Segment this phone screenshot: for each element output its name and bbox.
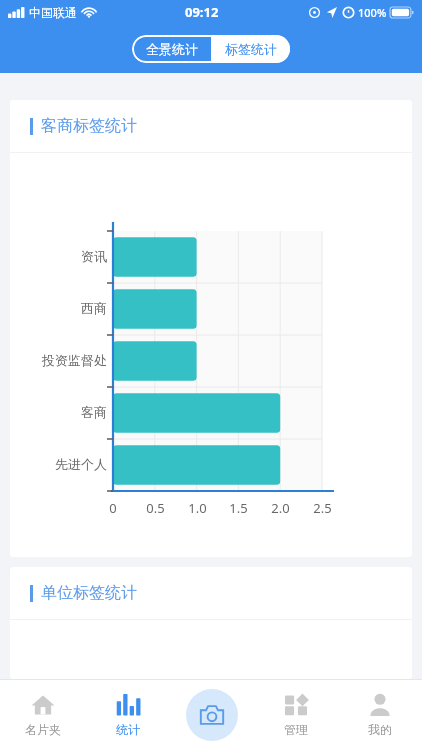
staticText: 中国联通 bbox=[29, 5, 77, 20]
button[interactable]: 名片夹 bbox=[0, 680, 85, 750]
staticText: 投资监督处 bbox=[10, 352, 107, 368]
staticText: 我的 bbox=[368, 722, 392, 737]
staticText: 先进个人 bbox=[10, 456, 107, 472]
button[interactable]: 标签统计 bbox=[211, 35, 290, 63]
staticText: 客商标签统计 bbox=[41, 116, 137, 136]
staticText: 全景统计 bbox=[146, 41, 198, 57]
button[interactable]: 管理 bbox=[254, 680, 338, 750]
staticText: 0.5 bbox=[146, 499, 165, 517]
staticText: 2.0 bbox=[271, 499, 290, 517]
staticText: 统计 bbox=[116, 722, 140, 737]
staticText: 客商 bbox=[10, 404, 107, 420]
staticText: 0 bbox=[109, 499, 117, 517]
staticText: 100% bbox=[358, 5, 387, 20]
staticText: 管理 bbox=[284, 722, 308, 737]
button[interactable]: 我的 bbox=[338, 680, 422, 750]
button[interactable]: 全景统计 bbox=[132, 35, 211, 63]
button[interactable]: Scan card with camera bbox=[170, 680, 254, 750]
staticText: 标签统计 bbox=[225, 41, 277, 57]
staticText: 2.5 bbox=[313, 499, 332, 517]
button[interactable]: 单位标签统计 bbox=[30, 567, 412, 619]
staticText: 西商 bbox=[10, 300, 107, 316]
staticText: 单位标签统计 bbox=[41, 583, 137, 603]
staticText: 09:12 bbox=[185, 3, 219, 21]
staticText: 1.0 bbox=[188, 499, 207, 517]
staticText: 资讯 bbox=[10, 248, 107, 264]
staticText: 名片夹 bbox=[25, 722, 61, 737]
button[interactable]: 统计 bbox=[85, 680, 170, 750]
button[interactable]: 客商标签统计 bbox=[30, 100, 412, 152]
staticText: 1.5 bbox=[229, 499, 248, 517]
